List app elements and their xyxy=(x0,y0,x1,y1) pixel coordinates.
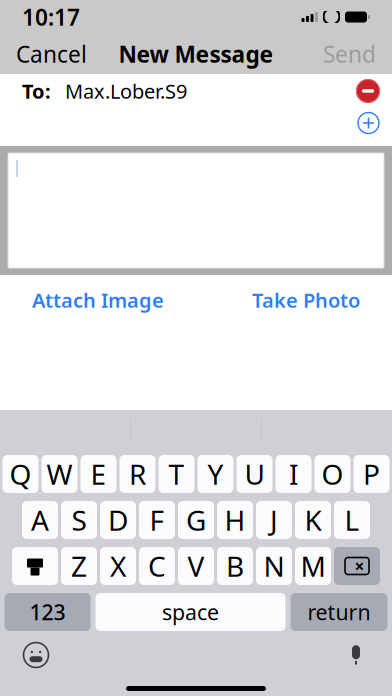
button[interactable]: Shift xyxy=(12,547,58,585)
button[interactable]: L xyxy=(334,501,370,539)
button[interactable]: P xyxy=(353,455,389,493)
staticText: × xyxy=(354,554,364,577)
button[interactable]: U xyxy=(236,455,272,493)
staticText: Attach Image xyxy=(32,287,164,313)
staticText: F xyxy=(149,501,164,539)
button[interactable]: Take Photo xyxy=(242,282,370,318)
staticText: A xyxy=(31,501,49,539)
button[interactable]: Emoji keyboard xyxy=(14,637,58,673)
staticText: E xyxy=(90,455,106,493)
button[interactable]: Z xyxy=(61,547,97,585)
staticText: Q xyxy=(9,455,31,493)
button[interactable]: 123 xyxy=(4,593,90,631)
button[interactable]: return xyxy=(290,593,387,631)
button[interactable]: Q xyxy=(2,455,38,493)
staticText: N xyxy=(263,547,284,585)
button[interactable]: Y xyxy=(197,455,233,493)
staticText: C xyxy=(148,547,166,585)
button[interactable]: F xyxy=(139,501,175,539)
staticText: R xyxy=(129,455,146,493)
staticText: 10:17 xyxy=(22,2,80,32)
staticText: I xyxy=(289,455,298,493)
button[interactable]: I xyxy=(275,455,311,493)
button[interactable]: N xyxy=(256,547,292,585)
staticText: return xyxy=(307,598,370,626)
button[interactable]: S xyxy=(61,501,97,539)
button[interactable]: R xyxy=(119,455,155,493)
staticText: S xyxy=(71,501,86,539)
staticText: T xyxy=(168,455,184,493)
button[interactable]: M xyxy=(295,547,331,585)
button[interactable]: E xyxy=(80,455,116,493)
button[interactable]: B xyxy=(217,547,253,585)
button[interactable]: C xyxy=(139,547,175,585)
staticText: Y xyxy=(207,455,223,493)
button[interactable]: K xyxy=(295,501,331,539)
staticText: X xyxy=(110,547,126,585)
staticText: K xyxy=(304,501,321,539)
button[interactable]: O xyxy=(314,455,350,493)
staticText: New Message xyxy=(118,39,273,69)
button[interactable]: X xyxy=(100,547,136,585)
staticText: J xyxy=(270,501,278,539)
button[interactable]: Delete xyxy=(334,547,380,585)
button[interactable]: W xyxy=(41,455,77,493)
staticText: V xyxy=(187,547,204,585)
staticText: To: xyxy=(22,78,51,104)
button[interactable]: Remove recipient xyxy=(344,74,392,108)
button[interactable]: Dictation xyxy=(334,637,378,673)
button[interactable]: D xyxy=(100,501,136,539)
staticText: space xyxy=(162,598,219,626)
staticText: L xyxy=(344,501,359,539)
button[interactable]: Cancel xyxy=(0,34,103,74)
staticText: D xyxy=(108,501,128,539)
staticText: B xyxy=(226,547,244,585)
staticText: Max.Lober.S9 xyxy=(65,78,187,104)
staticText: U xyxy=(244,455,264,493)
button[interactable]: H xyxy=(217,501,253,539)
button[interactable]: T xyxy=(158,455,194,493)
staticText: H xyxy=(224,501,245,539)
button[interactable]: space xyxy=(95,593,285,631)
staticText: Take Photo xyxy=(252,287,360,313)
staticText: P xyxy=(363,455,380,493)
staticText: O xyxy=(321,455,343,493)
staticText: Send xyxy=(323,39,376,69)
button[interactable]: A xyxy=(22,501,58,539)
button[interactable]: J xyxy=(256,501,292,539)
button[interactable]: V xyxy=(178,547,214,585)
staticText: M xyxy=(300,547,325,585)
button[interactable]: Add recipient xyxy=(345,108,392,138)
staticText: Z xyxy=(71,547,87,585)
button[interactable]: G xyxy=(178,501,214,539)
staticText: 123 xyxy=(29,598,65,626)
staticText: Cancel xyxy=(16,39,87,69)
staticText: W xyxy=(46,455,72,493)
button[interactable]: Send xyxy=(307,34,392,74)
button[interactable]: Attach Image xyxy=(22,282,174,318)
staticText: G xyxy=(186,501,206,539)
